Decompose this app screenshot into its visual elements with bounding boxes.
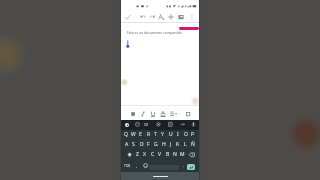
staticText: F <box>147 141 150 148</box>
button[interactable]: V <box>156 150 163 159</box>
button[interactable]: Text colour <box>159 110 167 118</box>
staticText: N <box>173 151 177 158</box>
button[interactable]: L <box>182 140 189 149</box>
button[interactable]: H <box>160 140 167 149</box>
button[interactable]: A <box>123 140 130 149</box>
button[interactable]: Ñ <box>189 140 196 149</box>
button[interactable]: X <box>141 150 148 159</box>
button[interactable]: T <box>152 130 159 139</box>
staticText: C <box>151 151 155 158</box>
staticText: E <box>139 131 142 138</box>
button[interactable]: B <box>164 150 171 159</box>
button[interactable]: Y <box>159 130 166 139</box>
staticText: J <box>170 141 172 148</box>
button[interactable]: M <box>179 150 186 159</box>
button[interactable]: Q <box>122 130 129 139</box>
button[interactable]: Italic <box>139 110 147 118</box>
button[interactable]: More tools <box>180 122 185 127</box>
button[interactable]: U <box>167 130 174 139</box>
button[interactable]: R <box>145 130 152 139</box>
button[interactable]: F <box>145 140 152 149</box>
staticText: T <box>154 131 157 138</box>
button[interactable]: Stickers <box>135 122 140 127</box>
staticText: S <box>132 141 135 148</box>
staticText: H <box>162 141 166 148</box>
staticText: O <box>184 131 188 138</box>
button[interactable]: D <box>138 140 145 149</box>
staticText: Y <box>161 131 164 138</box>
button[interactable]: Settings <box>156 122 161 127</box>
button[interactable]: Esta es un documento compartido <box>127 30 182 35</box>
button[interactable]: Text formatting <box>158 14 164 20</box>
button[interactable]: J <box>167 140 174 149</box>
staticText: P <box>191 131 195 138</box>
button[interactable]: G <box>152 140 159 149</box>
staticText: B <box>166 151 170 158</box>
staticText: L <box>184 141 187 148</box>
staticText: A <box>125 141 129 148</box>
button[interactable]: Voice input <box>191 122 196 127</box>
button[interactable]: S <box>130 140 137 149</box>
button[interactable]: ?123 <box>124 164 131 168</box>
button[interactable]: I <box>174 130 181 139</box>
button[interactable]: . <box>183 163 185 169</box>
staticText: W <box>131 131 136 138</box>
button[interactable]: N <box>171 150 178 159</box>
staticText: X <box>143 151 146 158</box>
staticText: R <box>147 131 151 138</box>
button[interactable]: Insert <box>168 14 174 20</box>
staticText: D <box>140 141 144 148</box>
button[interactable]: Underline <box>149 110 157 118</box>
button[interactable]: O <box>182 130 189 139</box>
staticText: M <box>180 151 185 158</box>
button[interactable]: Undo <box>140 14 146 20</box>
button[interactable]: Backspace <box>187 150 196 159</box>
staticText: V <box>158 151 162 158</box>
button[interactable]: E <box>137 130 144 139</box>
button[interactable]: C <box>149 150 156 159</box>
button[interactable]: K <box>174 140 181 149</box>
button[interactable]: More formatting <box>184 110 192 118</box>
staticText: U <box>169 131 173 138</box>
button[interactable]: Shift <box>125 150 134 159</box>
staticText: Z <box>136 151 139 158</box>
button[interactable]: Present <box>178 14 184 20</box>
button[interactable]: More options <box>189 14 195 20</box>
button[interactable]: Redo <box>149 14 155 20</box>
button[interactable]: , <box>136 163 138 169</box>
button[interactable]: Expand keyboard toolbar <box>125 123 129 127</box>
staticText: I <box>177 131 179 138</box>
button[interactable]: Z <box>134 150 141 159</box>
button[interactable]: Enter <box>187 164 195 170</box>
button[interactable]: Alignment <box>169 110 177 118</box>
button[interactable]: Clipboard <box>168 122 173 127</box>
button[interactable]: W <box>130 130 137 139</box>
staticText: G <box>154 141 158 148</box>
staticText: Q <box>124 131 128 138</box>
button[interactable]: Done <box>125 14 131 20</box>
button[interactable]: GIF <box>144 123 149 127</box>
button[interactable]: P <box>189 130 196 139</box>
button[interactable]: Bold <box>129 110 137 118</box>
staticText: Ñ <box>191 141 195 148</box>
staticText: K <box>176 141 180 148</box>
button[interactable]: Emoji <box>143 163 148 168</box>
